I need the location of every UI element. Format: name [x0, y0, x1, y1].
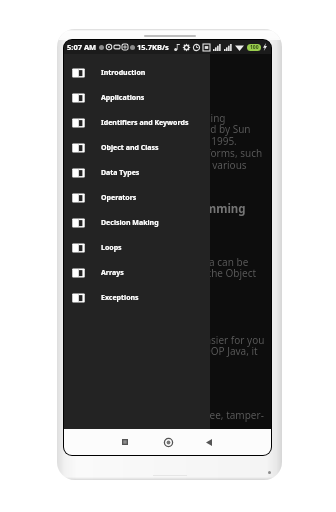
button[interactable]: Arrays — [64, 260, 210, 285]
button[interactable]: Object and Class — [64, 135, 210, 160]
staticText: knowledge of C++ it will be easier for y… — [72, 333, 265, 358]
staticText: Operators — [101, 193, 137, 203]
staticText: Exceptions — [101, 293, 139, 303]
staticText: Identifiers and Keywords — [101, 118, 189, 128]
staticText: Loops — [101, 243, 122, 253]
staticText: Data Types — [101, 168, 140, 178]
staticText: Java is simple, secure, virus-free, tamp… — [72, 408, 271, 445]
staticText: Introduction — [101, 68, 146, 78]
button[interactable]: Operators — [64, 185, 210, 210]
staticText: Java is a high-level programming languag… — [72, 111, 263, 172]
button[interactable]: Applications — [64, 85, 210, 110]
staticText: 5:07 AM — [67, 42, 97, 52]
staticText: Arrays — [101, 268, 124, 278]
button[interactable]: Exceptions — [64, 285, 210, 310]
button[interactable]: Home — [159, 433, 177, 451]
button[interactable]: Identifiers and Keywords — [64, 110, 210, 135]
button[interactable]: Introduction — [64, 60, 210, 85]
staticText: 100 — [250, 44, 259, 51]
button[interactable]: Back — [200, 433, 218, 451]
button[interactable]: Loops — [64, 235, 210, 260]
staticText: Object Oriented Programming — [72, 201, 246, 217]
staticText: 15.7KB/s — [137, 42, 169, 52]
staticText: Object and Class — [101, 143, 159, 153]
button[interactable]: Decision Making — [64, 210, 210, 235]
staticText: Applications — [101, 93, 145, 103]
button[interactable]: Recent apps — [116, 433, 134, 451]
button[interactable]: Data Types — [64, 160, 210, 185]
staticText: Everything in the world of Java can be b… — [72, 255, 257, 280]
staticText: Decision Making — [101, 218, 159, 228]
